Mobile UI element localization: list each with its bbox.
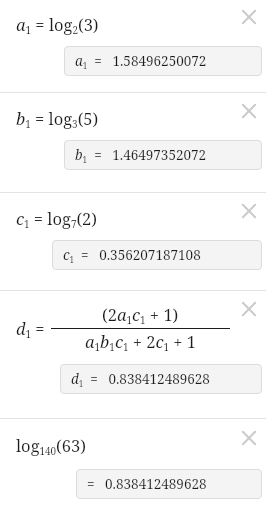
button[interactable]: d1 = 0.838412489628	[60, 364, 262, 394]
staticText: a1b1c1 + 2c1 + 1	[85, 330, 197, 354]
button[interactable]: Delete expression	[235, 97, 263, 125]
staticText: c1 = 0.356207187108	[63, 246, 201, 265]
button[interactable]: a1 = 1.58496250072	[64, 46, 262, 76]
button[interactable]: = 0.838412489628	[76, 469, 262, 499]
staticText: b1 = 1.46497352072	[75, 146, 207, 165]
button[interactable]: c1 = 0.356207187108	[52, 240, 262, 270]
staticText: d1 =	[16, 317, 45, 341]
button[interactable]: b1 = 1.46497352072	[64, 140, 262, 170]
staticText: = 0.838412489628	[87, 475, 207, 493]
staticText: b1 = log3(5)	[16, 107, 99, 131]
staticText: c1 = log7(2)	[16, 207, 98, 231]
staticText: a1 = 1.58496250072	[75, 52, 207, 71]
button[interactable]: Delete expression	[235, 197, 263, 225]
staticText: (2a1c1 + 1)	[102, 303, 179, 327]
button[interactable]: Delete expression	[235, 424, 263, 452]
staticText: d1 = 0.838412489628	[71, 370, 210, 389]
button[interactable]: Delete expression	[235, 295, 263, 323]
staticText: log140(63)	[16, 434, 86, 458]
staticText: a1 = log2(3)	[16, 13, 99, 37]
button[interactable]: Delete expression	[235, 3, 263, 31]
